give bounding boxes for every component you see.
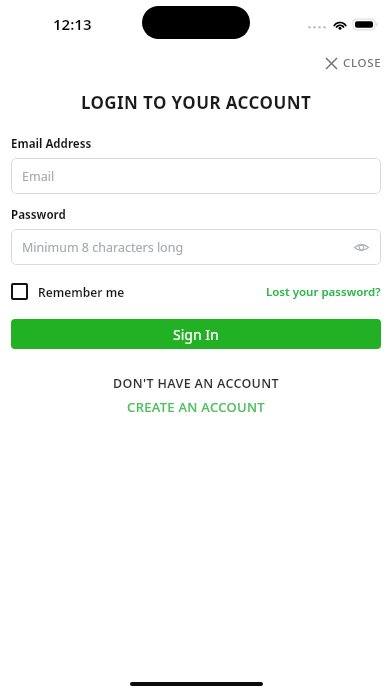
staticText: 12:13 <box>53 14 92 34</box>
button[interactable]: Remember me <box>11 280 125 303</box>
button[interactable]: CREATE AN ACCOUNT <box>121 397 271 417</box>
button[interactable]: Show password <box>350 236 372 258</box>
staticText: CLOSE <box>343 55 382 71</box>
staticText: Sign In <box>173 325 219 344</box>
button[interactable]: Sign In <box>11 319 381 349</box>
staticText: DON'T HAVE AN ACCOUNT <box>11 375 381 392</box>
staticText: LOGIN TO YOUR ACCOUNT <box>0 91 392 114</box>
button[interactable]: Email <box>11 158 381 194</box>
button[interactable]: Minimum 8 characters long <box>11 229 381 265</box>
staticText: Email <box>22 168 55 185</box>
staticText: Minimum 8 characters long <box>22 239 184 256</box>
staticText: Remember me <box>38 284 125 300</box>
button[interactable]: Lost your password? <box>266 281 381 303</box>
staticText: Password <box>11 207 66 223</box>
button[interactable]: Close <box>316 51 392 75</box>
staticText: Email Address <box>11 136 92 152</box>
